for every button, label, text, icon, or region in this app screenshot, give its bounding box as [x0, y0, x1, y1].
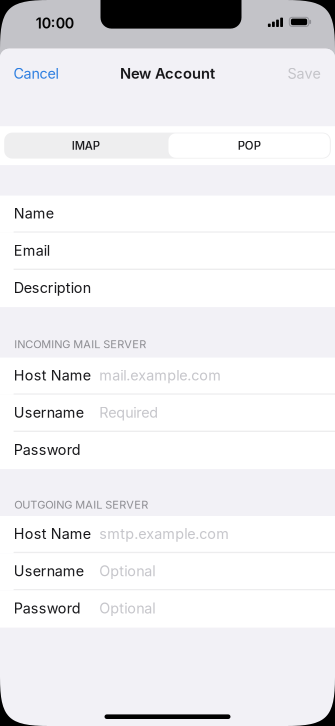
button[interactable]: Host Name	[0, 516, 335, 553]
staticText: Username	[14, 562, 84, 580]
staticText: smtp.example.com	[99, 525, 229, 542]
button[interactable]: Email	[0, 233, 335, 270]
staticText: Cancel	[13, 65, 58, 82]
button[interactable]: Username	[0, 395, 335, 432]
staticText: Required	[99, 404, 158, 421]
button[interactable]: Password	[0, 432, 335, 469]
staticText: New Account	[120, 65, 215, 82]
staticText: Description	[14, 279, 91, 296]
staticText: Optional	[99, 562, 155, 580]
button[interactable]: Name	[0, 196, 335, 233]
staticText: Host Name	[14, 367, 91, 384]
staticText: INCOMING MAIL SERVER	[14, 338, 146, 351]
staticText: Host Name	[14, 525, 91, 542]
staticText: Optional	[99, 599, 155, 617]
button[interactable]: IMAP	[4, 133, 167, 159]
staticText: Password	[14, 599, 81, 617]
button[interactable]: Description	[0, 270, 335, 307]
staticText: 10:00	[36, 15, 74, 32]
staticText: mail.example.com	[99, 367, 221, 384]
staticText: Username	[14, 404, 84, 421]
staticText: IMAP	[72, 139, 100, 152]
button[interactable]: Password	[0, 590, 335, 628]
staticText: Email	[14, 242, 50, 259]
button[interactable]: Username	[0, 553, 335, 590]
staticText: Save	[288, 65, 321, 82]
staticText: Password	[14, 441, 81, 458]
staticText: OUTGOING MAIL SERVER	[14, 498, 148, 511]
staticText: Name	[14, 205, 54, 222]
button[interactable]: POP	[167, 133, 331, 159]
button[interactable]: Cancel	[0, 63, 70, 84]
staticText: POP	[238, 139, 261, 152]
button[interactable]: Save	[276, 63, 335, 84]
button[interactable]: Host Name	[0, 358, 335, 395]
